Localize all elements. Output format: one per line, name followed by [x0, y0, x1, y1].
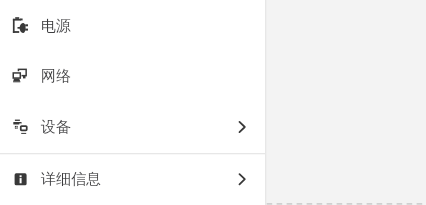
staticText: 电源: [41, 17, 71, 36]
staticText: 网络: [41, 67, 71, 86]
staticText: 设备: [41, 118, 71, 137]
staticText: 详细信息: [41, 170, 101, 189]
button[interactable]: 详细信息: [0, 154, 426, 205]
button[interactable]: 网络: [0, 50, 426, 100]
button[interactable]: 设备: [0, 100, 426, 153]
button[interactable]: 电源: [0, 0, 426, 50]
